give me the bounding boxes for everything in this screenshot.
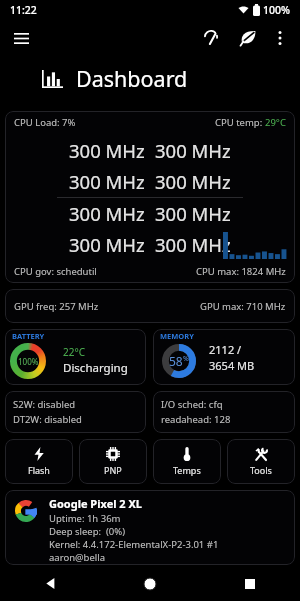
staticText: Uptime: 1h 36m bbox=[49, 512, 121, 525]
staticText: CPU Load: 7% bbox=[14, 116, 76, 129]
staticText: PNP bbox=[104, 464, 122, 476]
staticText: 2112 / bbox=[209, 342, 242, 357]
button[interactable]: More options bbox=[269, 27, 291, 49]
staticText: MEMORY bbox=[160, 331, 194, 341]
staticText: GPU max: 710 MHz bbox=[200, 300, 286, 313]
staticText: 300 MHz bbox=[155, 201, 231, 226]
staticText: 22°C bbox=[63, 345, 86, 359]
button[interactable]: Menu bbox=[6, 23, 36, 53]
staticText: 300 MHz bbox=[69, 201, 145, 226]
button[interactable]: Battery saver bbox=[234, 24, 262, 52]
staticText: aaron@bella bbox=[49, 551, 105, 564]
button[interactable]: BATTERY bbox=[5, 329, 146, 385]
staticText: 3654 MB bbox=[209, 358, 255, 373]
staticText: BATTERY bbox=[12, 331, 45, 341]
button[interactable]: MEMORY bbox=[153, 329, 295, 385]
staticText: Temps bbox=[173, 464, 201, 476]
staticText: Tools bbox=[250, 464, 272, 476]
staticText: CPU gov: schedutil bbox=[14, 265, 97, 278]
button[interactable]: Recents bbox=[200, 566, 300, 601]
staticText: S2W: disabled bbox=[13, 398, 76, 411]
button[interactable]: PNP bbox=[79, 439, 147, 484]
staticText: Discharging bbox=[63, 360, 128, 376]
staticText: readahead: 128 bbox=[161, 413, 231, 426]
staticText: Flash bbox=[28, 464, 50, 476]
staticText: 300 MHz bbox=[69, 232, 145, 257]
button[interactable]: Home bbox=[100, 566, 200, 601]
staticText: CPU temp: bbox=[215, 116, 265, 129]
staticText: Dashboard bbox=[76, 64, 188, 93]
button[interactable]: CPU Load: 7% bbox=[5, 111, 295, 283]
staticText: DT2W: disabled bbox=[13, 413, 82, 426]
button[interactable]: I/O sched: cfq bbox=[153, 391, 295, 433]
button[interactable]: Back bbox=[0, 566, 100, 601]
staticText: I/O sched: cfq bbox=[161, 398, 223, 411]
button[interactable]: Flash bbox=[5, 439, 73, 484]
staticText: 29°C bbox=[265, 116, 286, 129]
staticText: Google Pixel 2 XL bbox=[49, 496, 143, 511]
staticText: 300 MHz bbox=[155, 232, 231, 257]
staticText: 58 bbox=[169, 353, 183, 369]
staticText: 11:22 bbox=[10, 3, 37, 17]
staticText: GPU freq: 257 MHz bbox=[14, 300, 99, 313]
staticText: % bbox=[183, 354, 189, 364]
staticText: 300 MHz bbox=[69, 169, 145, 194]
button[interactable]: Temps bbox=[153, 439, 221, 484]
staticText: CPU max: 1824 MHz bbox=[196, 265, 286, 278]
button[interactable]: Google Pixel 2 XL bbox=[5, 490, 295, 565]
button[interactable]: Tools bbox=[227, 439, 295, 484]
staticText: 300 MHz bbox=[155, 138, 231, 163]
staticText: Deep sleep: (0%) bbox=[49, 525, 126, 538]
button[interactable]: Performance bbox=[197, 24, 225, 52]
button[interactable]: GPU freq: 257 MHz bbox=[5, 289, 295, 323]
staticText: 100% bbox=[18, 356, 39, 367]
button[interactable]: S2W: disabled bbox=[5, 391, 146, 433]
staticText: 300 MHz bbox=[69, 138, 145, 163]
staticText: 300 MHz bbox=[155, 169, 231, 194]
staticText: 100% bbox=[263, 3, 290, 17]
staticText: Kernel: 4.4.172-ElementalX-P2-3.01 #1 bbox=[49, 538, 219, 551]
